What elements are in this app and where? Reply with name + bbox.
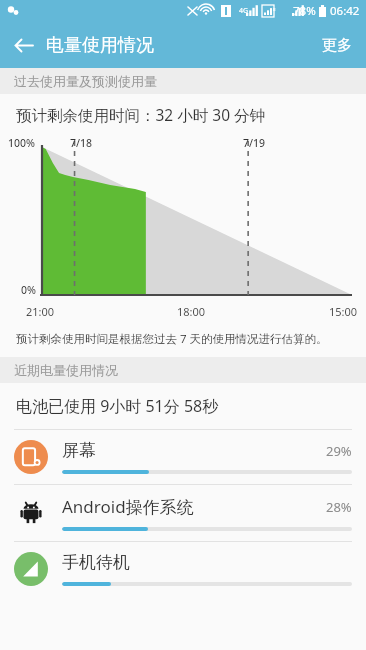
button[interactable]: 屏幕 [0, 430, 366, 484]
staticText: 屏幕 [62, 440, 96, 461]
staticText: 78% [293, 3, 316, 19]
staticText: 过去使用量及预测使用量 [14, 73, 157, 89]
staticText: ᴱ [273, 6, 276, 16]
staticText: 29% [326, 442, 352, 460]
staticText: 18:00 [177, 304, 206, 319]
staticText: Android操作系统 [62, 495, 194, 518]
button[interactable]: 更多 [308, 22, 366, 68]
staticText: 15:00 [329, 304, 358, 319]
staticText: 28% [326, 498, 352, 516]
staticText: 预计剩余使用时间：32 小时 30 分钟 [16, 104, 266, 125]
staticText: 100% [8, 136, 35, 150]
staticText: 更多 [322, 36, 352, 55]
staticText: 7/19 [243, 136, 266, 150]
staticText: 预计剩余使用时间是根据您过去 7 天的使用情况进行估算的。 [16, 331, 328, 347]
staticText: 4G [239, 6, 249, 16]
staticText: 电量使用情况 [46, 34, 154, 57]
staticText: 手机待机 [62, 552, 130, 573]
staticText: 近期电量使用情况 [14, 362, 118, 378]
staticText: 21:00 [26, 304, 55, 319]
staticText: 7/18 [70, 136, 93, 150]
staticText: 0% [21, 283, 36, 297]
button[interactable]: Android操作系统 [0, 485, 366, 541]
staticText: 电池已使用 9小时 51分 58秒 [16, 395, 219, 417]
staticText: 06:42 [330, 3, 360, 19]
button[interactable]: 返回 [0, 22, 46, 68]
button[interactable]: 手机待机 [0, 542, 366, 596]
